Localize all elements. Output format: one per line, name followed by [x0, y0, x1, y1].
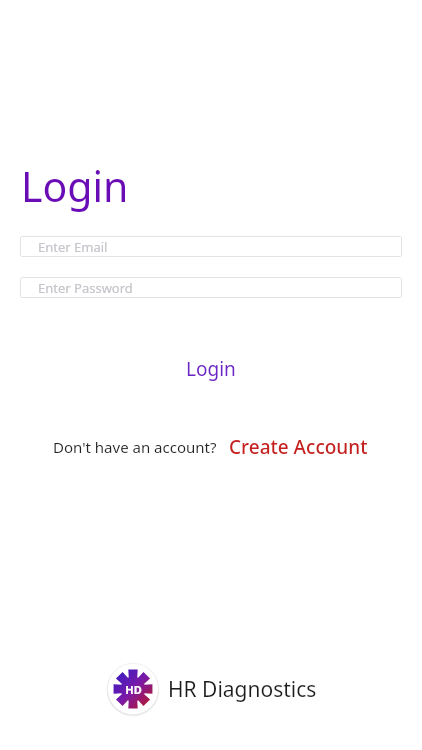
other: HR Diagnostics logo	[106, 662, 160, 716]
button[interactable]: Enter Password	[20, 277, 402, 298]
staticText: Login	[186, 356, 236, 382]
staticText: Login	[21, 158, 129, 214]
button[interactable]: Create Account	[227, 432, 370, 462]
button[interactable]: Enter Email	[20, 236, 402, 257]
staticText: HD	[125, 682, 142, 697]
staticText: HR Diagnostics	[168, 675, 317, 704]
staticText: Don't have an account?	[53, 437, 217, 457]
button[interactable]: Login	[0, 352, 422, 386]
staticText: Enter Password	[38, 279, 133, 297]
staticText: Enter Email	[38, 238, 108, 256]
staticText: Create Account	[229, 434, 368, 460]
